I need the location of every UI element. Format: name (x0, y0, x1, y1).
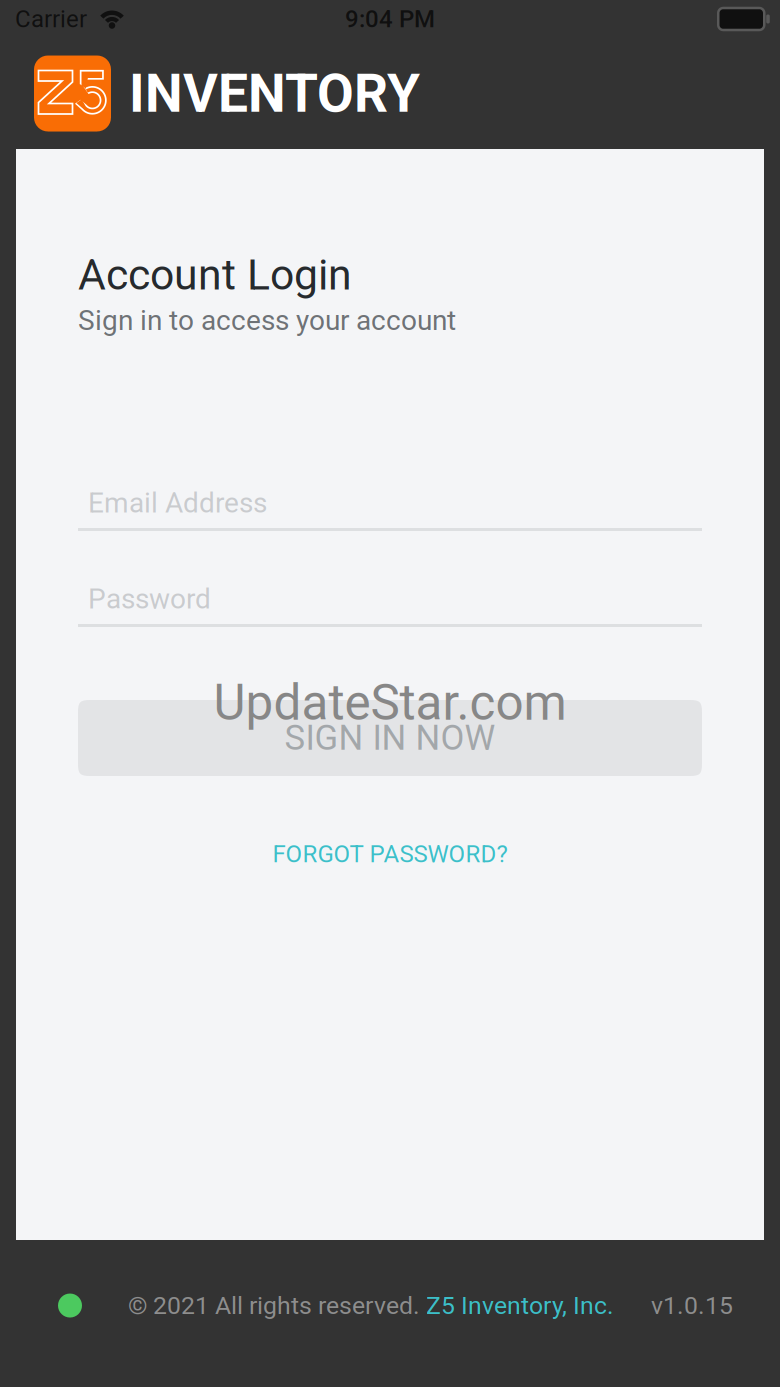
button[interactable]: Z5 Inventory, Inc. (426, 1291, 614, 1320)
staticText: Carrier (15, 5, 87, 33)
staticText: Account Login (78, 250, 352, 300)
staticText: FORGOT PASSWORD? (272, 840, 507, 868)
staticText: v1.0.15 (651, 1291, 733, 1320)
staticText: © 2021 All rights reserved. (128, 1291, 426, 1320)
staticText: SIGN IN NOW (284, 718, 495, 758)
staticText: 9:04 PM (345, 5, 435, 33)
staticText: Email Address (88, 487, 267, 519)
button[interactable]: FORGOT PASSWORD? (78, 834, 702, 874)
staticText: Password (88, 583, 211, 615)
staticText: UpdateStar.com (213, 674, 566, 732)
staticText: INVENTORY (129, 62, 420, 125)
staticText: Sign in to access your account (78, 304, 456, 337)
button[interactable]: SIGN IN NOW (78, 700, 702, 776)
staticText: Z5 Inventory, Inc. (426, 1291, 614, 1320)
